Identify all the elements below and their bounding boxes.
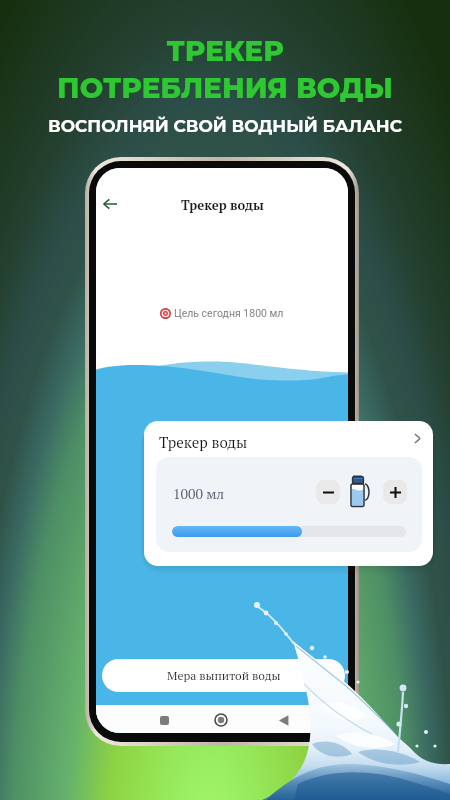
button[interactable]: Трекер воды xyxy=(144,421,433,566)
staticText: Мера выпитой воды xyxy=(167,668,281,684)
button[interactable]: Open water tracker xyxy=(406,427,428,449)
staticText: Трекер воды xyxy=(159,432,248,452)
staticText: ПОТРЕБЛЕНИЯ ВОДЫ xyxy=(57,71,393,105)
button[interactable]: Back xyxy=(97,191,123,217)
button[interactable]: Decrease amount xyxy=(316,480,340,504)
staticText: Трекер воды xyxy=(181,196,264,213)
staticText: ВОСПОЛНЯЙ СВОЙ ВОДНЫЙ БАЛАНС xyxy=(48,116,402,137)
staticText: ТРЕКЕР xyxy=(166,34,284,68)
button[interactable]: Мера выпитой воды xyxy=(102,659,345,692)
button[interactable]: Back xyxy=(270,707,296,733)
staticText: Цель сегодня 1800 мл xyxy=(174,307,284,319)
button[interactable]: Recents xyxy=(151,707,177,733)
staticText: 1000 мл xyxy=(173,484,225,503)
button[interactable]: Home xyxy=(208,707,234,733)
button[interactable]: Increase amount xyxy=(383,480,407,504)
